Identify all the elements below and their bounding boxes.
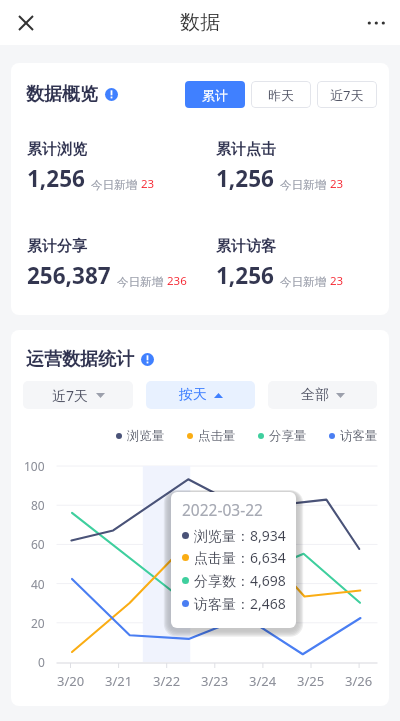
button[interactable]: More options <box>362 8 392 38</box>
button[interactable]: 全部 <box>268 381 377 409</box>
staticText: 近7天 <box>52 386 89 405</box>
button[interactable]: 近7天 <box>317 81 377 108</box>
staticText: 近7天 <box>330 86 364 104</box>
staticText: 1,256 <box>216 163 274 194</box>
staticText: 1,256 <box>216 260 274 291</box>
staticText: 点击量：6,634 <box>194 548 286 567</box>
staticText: 256,387 <box>27 260 111 291</box>
staticText: 100 <box>24 458 45 474</box>
staticText: 3/25 <box>297 672 325 690</box>
staticText: 分享数：4,698 <box>194 571 286 590</box>
staticText: 浏览量：8,934 <box>194 526 286 545</box>
staticText: 点击量 <box>198 428 236 444</box>
staticText: 236 <box>167 273 187 289</box>
staticText: 40 <box>31 576 45 592</box>
staticText: 3/23 <box>201 672 229 690</box>
staticText: 数据概览 <box>26 83 98 106</box>
staticText: 3/20 <box>57 672 85 690</box>
staticText: 今日新增 <box>117 275 163 289</box>
staticText: 3/26 <box>345 672 373 690</box>
staticText: 累计分享 <box>27 237 87 256</box>
button[interactable]: 昨天 <box>251 81 311 108</box>
button[interactable]: 近7天 <box>23 381 133 409</box>
staticText: 累计浏览 <box>27 140 87 159</box>
staticText: 3/22 <box>153 672 181 690</box>
staticText: 数据 <box>180 10 220 35</box>
staticText: 80 <box>31 497 45 513</box>
staticText: 访客量 <box>340 428 378 444</box>
staticText: 3/21 <box>105 672 133 690</box>
staticText: 分享量 <box>269 428 307 444</box>
button[interactable]: 按天 <box>146 381 255 409</box>
staticText: 今日新增 <box>280 178 326 192</box>
staticText: 累计点击 <box>216 140 276 159</box>
staticText: 累计访客 <box>216 237 276 256</box>
staticText: 昨天 <box>268 87 294 103</box>
staticText: 访客量：2,468 <box>194 594 286 613</box>
staticText: 23 <box>330 273 344 289</box>
staticText: 0 <box>38 654 45 670</box>
button[interactable]: Close <box>11 8 40 37</box>
staticText: 3/24 <box>249 672 277 690</box>
staticText: 全部 <box>301 386 329 404</box>
staticText: 累计 <box>202 87 228 103</box>
staticText: 浏览量 <box>127 428 165 444</box>
staticText: 1,256 <box>27 163 85 194</box>
button[interactable]: 累计 <box>185 81 245 108</box>
staticText: 按天 <box>179 386 207 404</box>
staticText: 23 <box>141 176 155 192</box>
staticText: 今日新增 <box>280 275 326 289</box>
staticText: 60 <box>31 536 45 552</box>
staticText: 运营数据统计 <box>26 348 134 371</box>
staticText: 2022-03-22 <box>182 499 263 520</box>
staticText: 23 <box>330 176 344 192</box>
staticText: 今日新增 <box>91 178 137 192</box>
staticText: 20 <box>31 615 45 631</box>
